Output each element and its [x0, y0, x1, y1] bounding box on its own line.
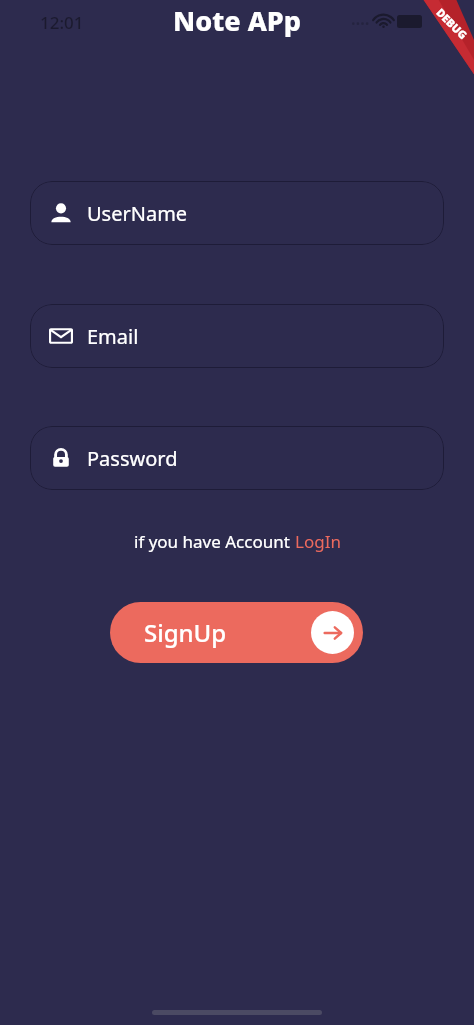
other: Email — [48, 323, 74, 349]
button[interactable]: Email — [30, 304, 444, 368]
other: User — [48, 200, 74, 226]
staticText: UserName — [87, 200, 188, 227]
staticText: SignUp — [144, 616, 227, 649]
other: Password — [48, 445, 74, 471]
staticText: DEBUG — [433, 5, 471, 42]
button[interactable]: Password — [30, 426, 444, 490]
staticText: if you have Account — [134, 530, 295, 553]
button[interactable]: User — [30, 181, 444, 245]
button[interactable]: LogIn — [295, 530, 341, 553]
button[interactable]: SignUp — [110, 602, 363, 663]
staticText: LogIn — [295, 530, 341, 553]
staticText: Note APp — [173, 2, 301, 39]
staticText: Password — [87, 445, 178, 472]
staticText: Email — [87, 323, 139, 350]
staticText: 12:01 — [40, 11, 84, 34]
